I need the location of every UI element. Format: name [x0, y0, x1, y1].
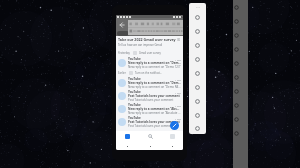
staticText: Post Tutorials loves your comment [128, 98, 174, 102]
staticText: Post Tutorials loves your comment [128, 120, 180, 124]
staticText: YouTube [128, 103, 175, 107]
staticText: 1 Oct [175, 91, 181, 94]
button[interactable]: Earlier [118, 69, 183, 76]
button[interactable]: Emulator control 8 [189, 122, 206, 134]
button[interactable]: YouTube [116, 115, 183, 128]
button[interactable]: Search [139, 131, 161, 142]
staticText: New reply to a comment on “Demo NEW AD” [128, 85, 181, 89]
staticText: New reply to a comment on “Demo 123” [128, 65, 181, 69]
button[interactable]: Emulator control 1 [189, 24, 206, 38]
staticText: Post Tutorials loves your comment [128, 94, 180, 98]
staticText: 1 Oct [175, 78, 181, 81]
staticText: New reply to a comment on “Absolute - Am… [128, 107, 181, 111]
button[interactable]: Emulator control 3 [189, 52, 206, 66]
staticText: YouTube [128, 116, 175, 120]
button[interactable]: YouTube [116, 56, 183, 69]
button[interactable]: YouTube [116, 102, 183, 115]
button[interactable]: Yesterday [118, 49, 183, 56]
staticText: 30 Sept [177, 38, 183, 42]
button[interactable]: Mail [116, 131, 139, 142]
staticText: Post Tutorials loves your comment [128, 124, 174, 128]
staticText: 1 Oct [175, 104, 181, 107]
staticText: New reply to a comment on “Demo 123” [128, 61, 181, 65]
staticText: Take our 2022 Gmail user survey [118, 37, 176, 42]
button[interactable]: YouTube [116, 76, 183, 89]
button[interactable]: Meet [161, 131, 183, 142]
staticText: Earlier [118, 71, 126, 75]
staticText: New reply to a comment on “Absolute - Am… [128, 111, 181, 115]
staticText: Tell us how we can improve Gmail [118, 43, 163, 47]
button[interactable]: Emulator control 6 [189, 94, 206, 108]
button[interactable]: Compose [170, 121, 179, 130]
button[interactable]: Emulator control 0 [189, 10, 206, 24]
button[interactable]: Emulator control 5 [189, 80, 206, 94]
staticText: 1 Oct [175, 117, 181, 120]
button[interactable]: Emulator control 7 [189, 108, 206, 122]
button[interactable]: Emulator control 4 [189, 66, 206, 80]
staticText: Yesterday [118, 51, 130, 55]
staticText: Turn on the notificat... [135, 71, 162, 75]
staticText: New reply to a comment on “Demo NEW AD” [128, 81, 181, 85]
staticText: 1 Oct [175, 58, 181, 61]
staticText: YouTube [128, 90, 175, 94]
button[interactable]: YouTube [116, 89, 183, 102]
staticText: YouTube [128, 77, 175, 81]
staticText: YouTube [128, 57, 175, 61]
staticText: ⋯ [196, 5, 200, 10]
staticText: Gmail user survey [139, 51, 161, 55]
button[interactable]: Take our 2022 Gmail user survey [116, 37, 183, 47]
button[interactable]: Emulator control 2 [189, 38, 206, 52]
